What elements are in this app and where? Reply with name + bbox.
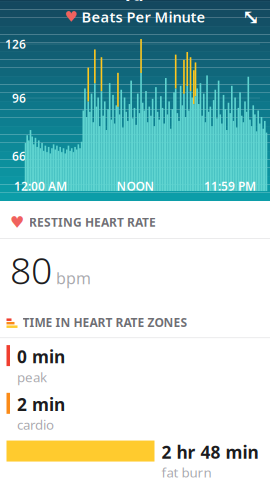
staticText: 0 min [17, 345, 65, 368]
staticText: 12:00 AM [14, 178, 67, 194]
staticText: peak [17, 368, 47, 386]
staticText: 11:59 PM [204, 178, 256, 194]
staticText: 66 [12, 148, 26, 164]
staticText: 80 [10, 245, 52, 294]
button[interactable]: Expand chart [238, 6, 264, 28]
staticText: ♥ [64, 8, 77, 25]
staticText: Friday, Feb 19 [121, 0, 221, 11]
staticText: TIME IN HEART RATE ZONES [22, 314, 187, 330]
staticText: NOON [116, 178, 154, 194]
staticText: RESTING HEART RATE [29, 214, 156, 230]
staticText: Beats Per Minute [81, 7, 205, 26]
button[interactable]: ‹ [0, 0, 113, 11]
staticText: ‹ [7, 0, 15, 7]
staticText: ♥ [10, 213, 24, 231]
staticText: 2 min [17, 393, 65, 416]
staticText: bpm [56, 267, 91, 288]
staticText: 126 [5, 36, 26, 52]
staticText: fat burn [161, 464, 211, 480]
staticText: 2 hr 48 min [161, 440, 258, 463]
staticText: ⤡ [242, 4, 260, 29]
staticText: 96 [12, 90, 26, 106]
staticText: cardio [17, 416, 54, 433]
